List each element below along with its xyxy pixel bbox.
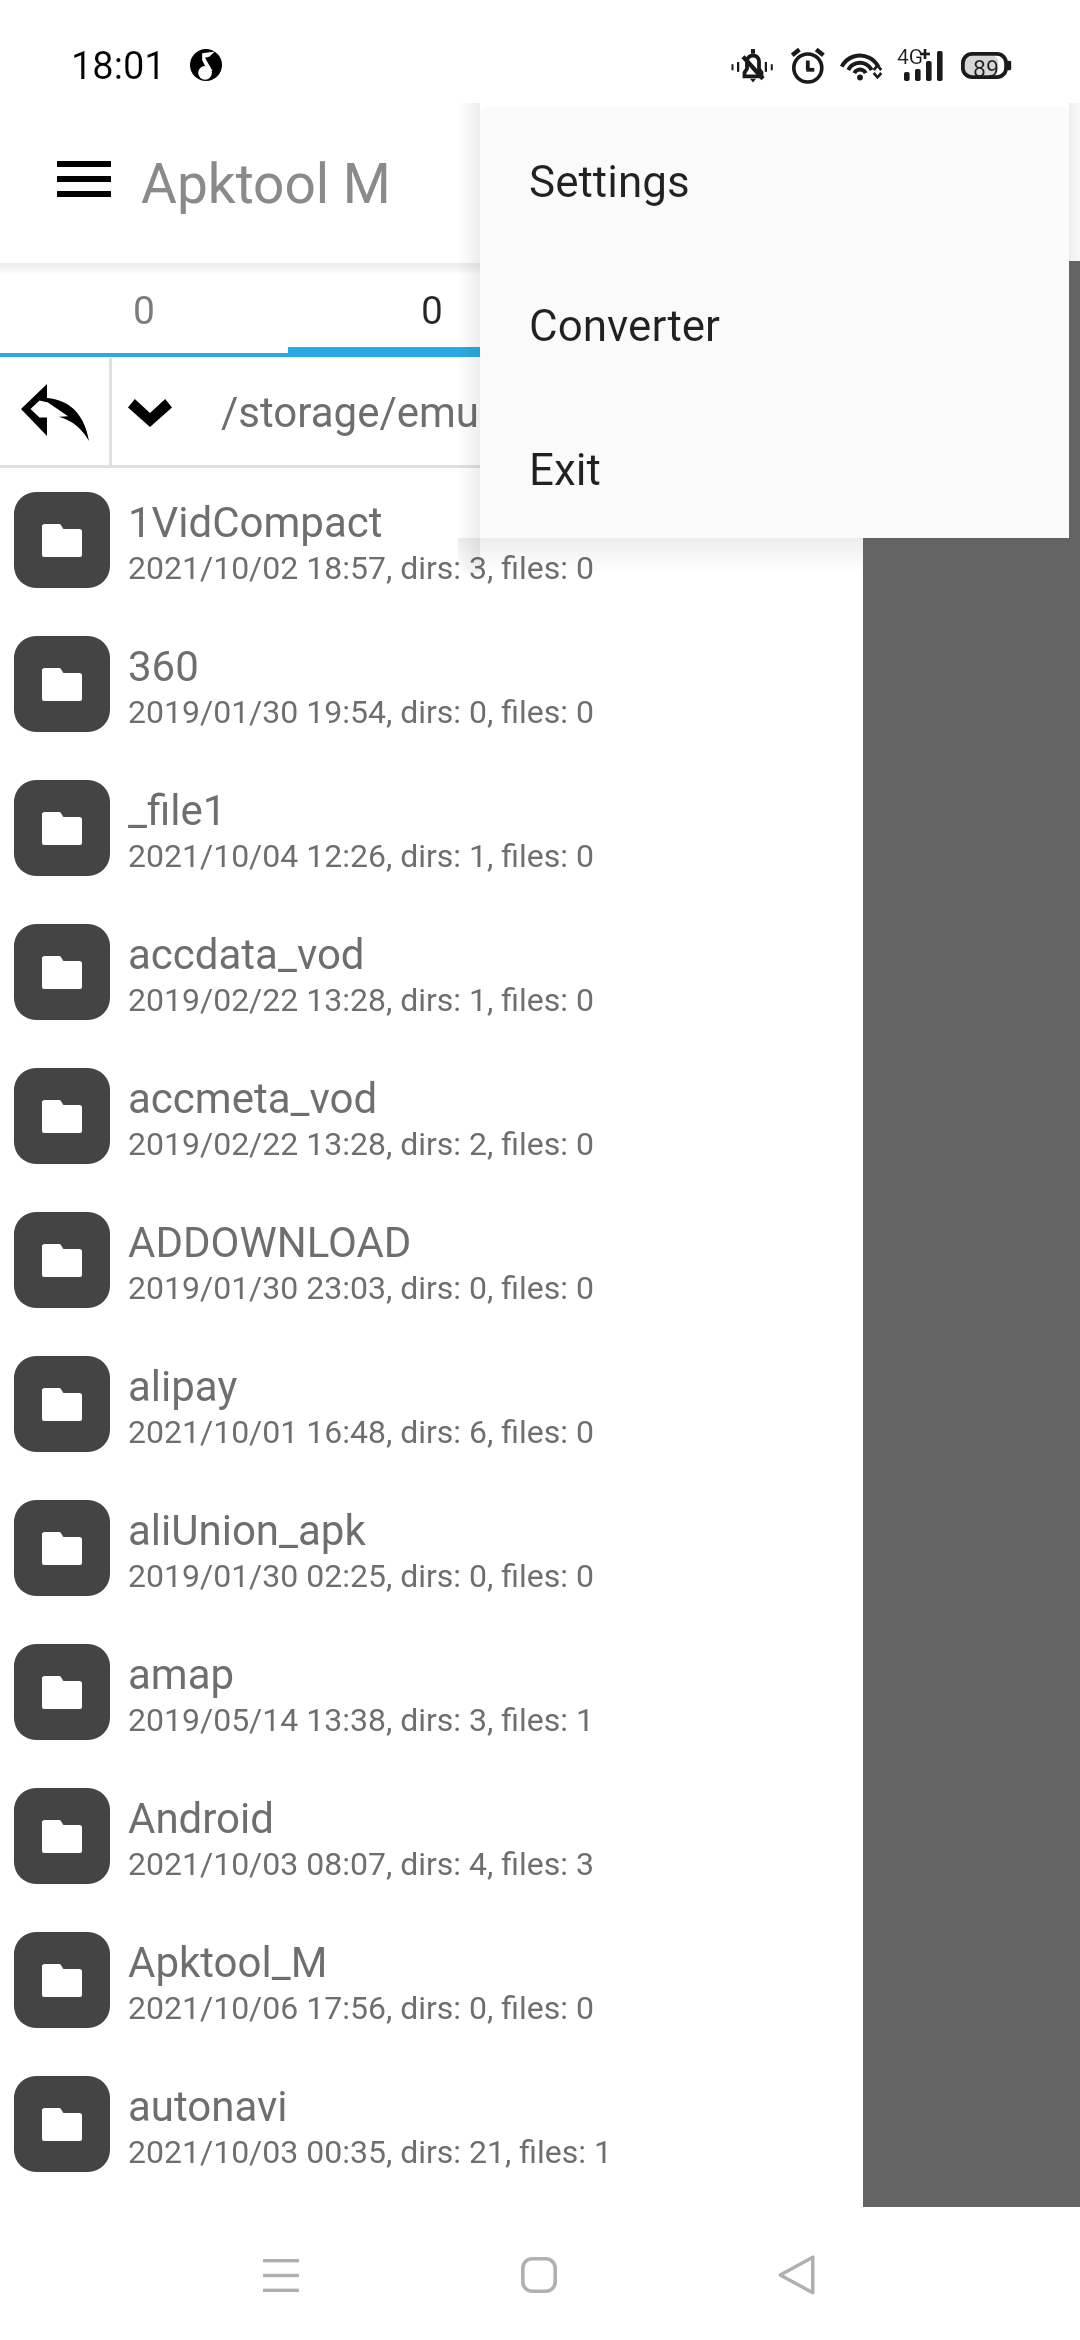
- staticText: alipay: [128, 1362, 238, 1411]
- button[interactable]: accmeta_vod: [0, 1044, 1080, 1188]
- staticText: 18:01: [71, 44, 166, 89]
- staticText: 2019/01/30 02:25, dirs: 0, files: 0: [128, 1557, 594, 1595]
- staticText: 0: [421, 288, 443, 334]
- staticText: aliUnion_apk: [128, 1506, 366, 1555]
- button[interactable]: 0: [0, 263, 288, 357]
- button[interactable]: amap: [0, 1620, 1080, 1764]
- button[interactable]: accdata_vod: [0, 900, 1080, 1044]
- button[interactable]: ADDOWNLOAD: [0, 1188, 1080, 1332]
- staticText: /storage/emulated/0: [221, 388, 613, 437]
- staticText: 0: [709, 288, 731, 334]
- button[interactable]: Recents: [217, 2217, 345, 2333]
- staticText: 360: [128, 642, 199, 691]
- staticText: Android: [128, 1794, 274, 1843]
- staticText: amap: [128, 1650, 235, 1699]
- staticText: Exit: [529, 444, 601, 496]
- button[interactable]: Back: [732, 2217, 860, 2333]
- staticText: 2019/02/22 13:28, dirs: 1, files: 0: [128, 981, 594, 1019]
- staticText: Converter: [529, 300, 721, 352]
- staticText: 2021/10/03 00:35, dirs: 21, files: 1: [128, 2133, 612, 2171]
- staticText: ADDOWNLOAD: [128, 1218, 412, 1267]
- button[interactable]: Apktool_M: [0, 1908, 1080, 2052]
- button[interactable]: aliUnion_apk: [0, 1476, 1080, 1620]
- staticText: 2019/01/30 19:54, dirs: 0, files: 0: [128, 693, 594, 731]
- button[interactable]: 0: [288, 263, 576, 357]
- staticText: 2021/10/06 17:56, dirs: 0, files: 0: [128, 1989, 594, 2027]
- staticText: autonavi: [128, 2082, 288, 2131]
- button[interactable]: Exit: [480, 398, 1069, 538]
- button[interactable]: Converter: [480, 254, 1069, 398]
- button[interactable]: alipay: [0, 1332, 1080, 1476]
- staticText: Apktool_M: [128, 1938, 328, 1987]
- button[interactable]: Android: [0, 1764, 1080, 1908]
- staticText: 2021/10/04 12:26, dirs: 1, files: 0: [128, 837, 594, 875]
- button[interactable]: Settings: [480, 110, 1069, 254]
- staticText: 2019/01/30 23:03, dirs: 0, files: 0: [128, 1269, 594, 1307]
- staticText: _file1: [128, 786, 227, 835]
- button[interactable]: _file1: [0, 756, 1080, 900]
- button[interactable]: Home: [475, 2217, 603, 2333]
- staticText: 2021/10/01 16:48, dirs: 6, files: 0: [128, 1413, 594, 1451]
- button[interactable]: 0: [864, 263, 1080, 357]
- staticText: 2021/10/02 18:57, dirs: 3, files: 0: [128, 549, 594, 587]
- staticText: 1VidCompact: [128, 498, 383, 547]
- staticText: accdata_vod: [128, 930, 365, 979]
- button[interactable]: Navigation menu: [21, 115, 147, 243]
- staticText: 2019/02/22 13:28, dirs: 2, files: 0: [128, 1125, 594, 1163]
- staticText: Apktool M: [141, 152, 391, 216]
- button[interactable]: 0: [576, 263, 864, 357]
- staticText: 2019/05/14 13:38, dirs: 3, files: 1: [128, 1701, 594, 1739]
- staticText: 89: [973, 56, 999, 83]
- button[interactable]: 1VidCompact: [0, 468, 1080, 612]
- staticText: 4G: [897, 45, 924, 70]
- staticText: accmeta_vod: [128, 1074, 378, 1123]
- button[interactable]: Go up one folder: [0, 357, 109, 468]
- button[interactable]: 360: [0, 612, 1080, 756]
- staticText: 2021/10/03 08:07, dirs: 4, files: 3: [128, 1845, 594, 1883]
- button[interactable]: autonavi: [0, 2052, 1080, 2196]
- staticText: Settings: [529, 156, 690, 208]
- button[interactable]: Expand path: [112, 357, 188, 468]
- staticText: 0: [133, 288, 155, 334]
